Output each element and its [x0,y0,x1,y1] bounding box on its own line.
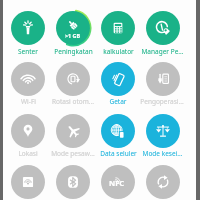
staticText: Manager Pe... [141,47,184,56]
button[interactable]: Mode pesaw... [53,111,93,151]
button[interactable]: Rotasi otom... [53,59,93,99]
staticText: Data seluler [100,149,137,158]
staticText: Lokasi [18,149,38,158]
button[interactable]: Wi-Fi [8,59,48,99]
button[interactable]: Data seluler [98,111,138,151]
staticText: >1 GB [65,32,81,39]
button[interactable]: Getar [98,59,138,99]
staticText: Mode pesaw... [51,149,95,158]
button[interactable]: Senter [8,8,48,48]
staticText: Senter [18,47,38,56]
button[interactable] [8,162,48,200]
button[interactable]: kalkulator [98,8,138,48]
staticText: Mode kesei... [142,149,183,158]
staticText: Wi-Fi [21,97,36,106]
button[interactable] [53,162,93,200]
staticText: Pengoperasi... [140,97,184,106]
button[interactable]: Manager Pe... [143,8,183,48]
staticText: NFC [109,178,125,188]
button[interactable]: Pengoperasi... [143,59,183,99]
staticText: Peningkatan [54,47,93,56]
staticText: Rotasi otom... [52,97,94,106]
button[interactable]: Lokasi [8,111,48,151]
button[interactable]: Peningkatan [53,8,93,48]
button[interactable] [143,162,183,200]
button[interactable] [98,162,138,200]
staticText: kalkulator [103,47,134,56]
button[interactable]: Mode kesei... [143,111,183,151]
staticText: Getar [109,97,127,106]
